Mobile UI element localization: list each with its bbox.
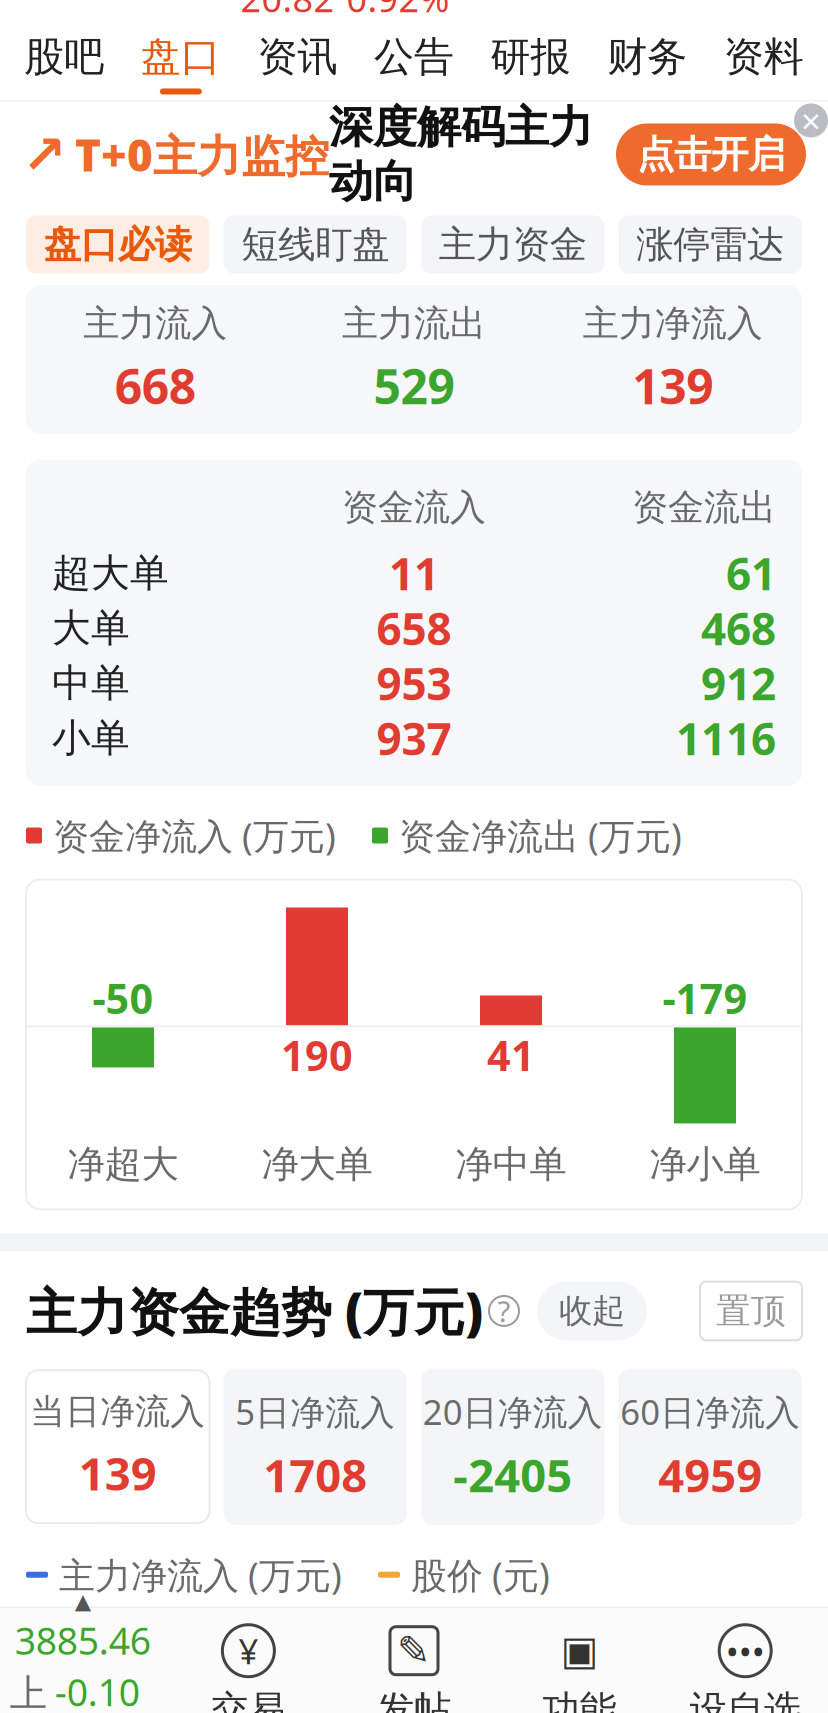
- button[interactable]: 股吧: [6, 18, 123, 100]
- button[interactable]: ▲: [0, 1589, 166, 1713]
- button[interactable]: 资讯: [239, 18, 356, 100]
- button[interactable]: 资料: [705, 18, 822, 100]
- staticText: 上证: [10, 1671, 47, 1713]
- button[interactable]: 涨停雷达: [618, 215, 802, 273]
- staticText: 收起: [559, 1290, 625, 1331]
- staticText: 资金净流出 (万元): [388, 812, 682, 859]
- staticText: 937: [376, 709, 451, 767]
- staticText: 资金流出: [632, 485, 776, 530]
- staticText: 研报: [491, 32, 571, 81]
- button[interactable]: 60日净流入: [618, 1369, 802, 1525]
- staticText: ▼: [96, 1516, 119, 1549]
- button[interactable]: 置顶: [700, 1282, 802, 1340]
- staticText: 净大单: [261, 1141, 372, 1187]
- button[interactable]: 研报: [472, 18, 589, 100]
- button[interactable]: 盘口必读: [26, 215, 209, 273]
- staticText: 盘口: [141, 32, 221, 81]
- button[interactable]: 5日净流入: [223, 1369, 407, 1525]
- button[interactable]: 公告: [356, 18, 472, 100]
- staticText: 139: [632, 354, 713, 417]
- button[interactable]: 20日净流入: [421, 1369, 604, 1525]
- staticText: 置顶: [716, 1290, 786, 1332]
- staticText: 交易: [211, 1687, 285, 1713]
- staticText: 61: [726, 544, 776, 602]
- button[interactable]: ▣: [497, 1623, 662, 1713]
- staticText: ×: [801, 97, 821, 143]
- button[interactable]: 关闭广告: [794, 103, 828, 137]
- staticText: 主力净流入 (万元): [48, 1551, 342, 1599]
- staticText: ✎: [397, 1628, 431, 1673]
- staticText: 5日净流入: [235, 1389, 395, 1435]
- staticText: 净中单: [455, 1141, 566, 1187]
- staticText: 发帖: [377, 1687, 451, 1713]
- staticText: 涨停雷达: [636, 222, 784, 267]
- staticText: 资金流入: [342, 485, 486, 530]
- button[interactable]: •••: [662, 1623, 828, 1713]
- staticText: 4959: [658, 1445, 762, 1505]
- staticText: 468: [701, 599, 776, 657]
- staticText: 点击开启: [637, 132, 785, 177]
- staticText: -179: [662, 971, 747, 1025]
- staticText: -0.10%: [55, 1667, 140, 1713]
- staticText: 3885.46: [15, 1615, 151, 1665]
- staticText: ?: [489, 1291, 518, 1330]
- staticText: 资讯: [257, 32, 337, 81]
- staticText: 股吧: [24, 32, 104, 81]
- button[interactable]: 盘口: [123, 18, 239, 100]
- staticText: 658: [376, 599, 451, 657]
- staticText: 功能: [543, 1687, 617, 1713]
- staticText: 912: [701, 654, 776, 712]
- staticText: 主力资金: [439, 222, 587, 267]
- button[interactable]: ↗: [0, 111, 828, 197]
- staticText: ▲: [75, 1589, 91, 1613]
- staticText: 1116: [676, 709, 776, 767]
- staticText: 盘口必读: [44, 222, 192, 267]
- staticText: 资金净流入 (万元): [42, 812, 336, 859]
- staticText: 主力净流入: [583, 301, 763, 346]
- staticText: 41: [487, 1027, 535, 1082]
- staticText: 财务: [607, 32, 687, 81]
- staticText: 超大单: [52, 549, 169, 597]
- staticText: 11: [389, 544, 439, 602]
- button[interactable]: ✎: [331, 1623, 497, 1713]
- staticText: 60日净流入: [620, 1389, 800, 1435]
- staticText: 深度解码主力动向: [329, 100, 593, 208]
- staticText: 主力流入: [83, 301, 227, 346]
- staticText: 953: [376, 654, 451, 712]
- staticText: 大单: [52, 604, 130, 652]
- staticText: 公告: [374, 32, 454, 81]
- staticText: 当日净流入: [30, 1390, 205, 1433]
- staticText: 主力资金趋势 (万元): [26, 1277, 483, 1345]
- button[interactable]: ¥: [166, 1623, 331, 1713]
- staticText: 190: [281, 1027, 353, 1082]
- staticText: 529: [373, 354, 454, 417]
- button[interactable]: 当日净流入: [26, 1370, 209, 1523]
- staticText: 主力流出: [342, 301, 486, 346]
- staticText: 668: [115, 354, 196, 417]
- staticText: ↗: [22, 124, 67, 185]
- button[interactable]: 主力资金: [421, 215, 604, 273]
- staticText: 0.92%: [346, 0, 449, 22]
- staticText: 股价 (元): [400, 1551, 550, 1599]
- staticText: -2405: [453, 1445, 572, 1505]
- staticText: 20日净流入: [423, 1389, 603, 1435]
- staticText: 20.82: [240, 0, 334, 22]
- button[interactable]: 短线盯盘: [223, 215, 407, 273]
- staticText: 小单: [52, 714, 130, 762]
- staticText: •••: [726, 1628, 765, 1674]
- staticText: ¥: [238, 1628, 258, 1674]
- staticText: 净小单: [649, 1141, 760, 1187]
- staticText: 短线盯盘: [241, 222, 389, 267]
- staticText: ▣: [561, 1628, 599, 1673]
- staticText: 1708: [263, 1445, 367, 1505]
- staticText: 设自选: [690, 1687, 801, 1713]
- staticText: T+0主力监控: [75, 125, 329, 184]
- staticText: 净超大: [67, 1141, 178, 1187]
- staticText: 中单: [52, 659, 130, 707]
- button[interactable]: 收起: [537, 1281, 647, 1340]
- button[interactable]: 财务: [589, 18, 705, 100]
